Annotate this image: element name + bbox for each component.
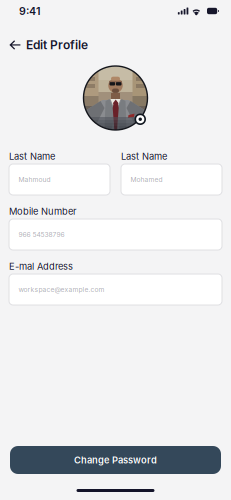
- button[interactable]: Back: [9, 33, 26, 57]
- button[interactable]: Mohamed: [121, 164, 222, 195]
- button[interactable]: Change profile photo: [83, 66, 147, 130]
- staticText: Last Name: [9, 151, 55, 162]
- staticText: Mohamed: [130, 175, 162, 184]
- button[interactable]: 966 54538796: [9, 219, 222, 250]
- staticText: 9:41: [19, 4, 41, 17]
- button[interactable]: Mahmoud: [9, 164, 110, 195]
- staticText: E-mal Address: [9, 261, 73, 272]
- staticText: Mahmoud: [18, 175, 50, 184]
- button[interactable]: workspace@example.com: [9, 274, 222, 305]
- staticText: Mobile Number: [9, 206, 77, 217]
- button[interactable]: Change Password: [10, 446, 221, 474]
- staticText: 966 54538796: [18, 230, 64, 239]
- staticText: Change Password: [74, 454, 157, 466]
- staticText: Last Name: [121, 151, 167, 162]
- staticText: workspace@example.com: [18, 285, 104, 294]
- staticText: Edit Profile: [26, 38, 88, 52]
